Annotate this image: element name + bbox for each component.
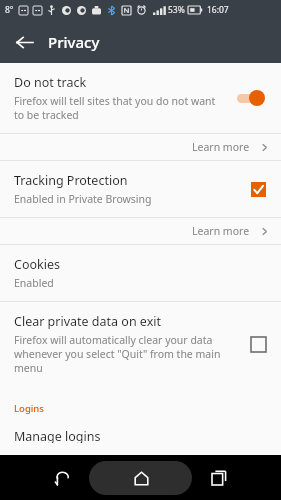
button[interactable]: Back — [8, 26, 40, 58]
button[interactable]: Checked — [247, 178, 269, 200]
staticText: Firefox will tell sites that you do not … — [14, 94, 216, 122]
button[interactable]: Home — [124, 461, 158, 495]
staticText: Clear private data on exit — [14, 313, 162, 330]
staticText: Do not track — [14, 74, 87, 91]
button[interactable]: Tracking Protection — [0, 161, 281, 217]
button[interactable]: Do not track toggle — [235, 88, 269, 108]
button[interactable]: Unchecked — [247, 333, 269, 355]
button[interactable]: Clear private data on exit — [0, 302, 281, 386]
staticText: Learn more — [192, 140, 250, 154]
button[interactable]: Learn more — [0, 218, 281, 244]
staticText: 8° — [5, 4, 14, 16]
button[interactable]: Logins — [0, 396, 281, 419]
staticText: Logins — [14, 402, 44, 415]
button[interactable]: Do not track — [0, 63, 281, 133]
staticText: 53% — [168, 4, 185, 16]
staticText: Enabled in Private Browsing — [14, 192, 152, 206]
button[interactable]: Cookies — [0, 245, 281, 301]
button[interactable]: Learn more — [0, 134, 281, 160]
staticText: Enabled — [14, 276, 54, 290]
staticText: Learn more — [192, 224, 250, 238]
button[interactable]: Recents — [202, 461, 236, 495]
staticText: Manage logins — [14, 428, 101, 443]
staticText: Tracking Protection — [14, 172, 128, 189]
staticText: 16:07 — [207, 4, 229, 16]
staticText: Cookies — [14, 256, 60, 273]
staticText: Privacy — [48, 32, 100, 52]
button[interactable]: Manage logins — [0, 419, 281, 455]
button[interactable]: Back — [45, 461, 79, 495]
staticText: Firefox will automatically clear your da… — [14, 333, 221, 375]
